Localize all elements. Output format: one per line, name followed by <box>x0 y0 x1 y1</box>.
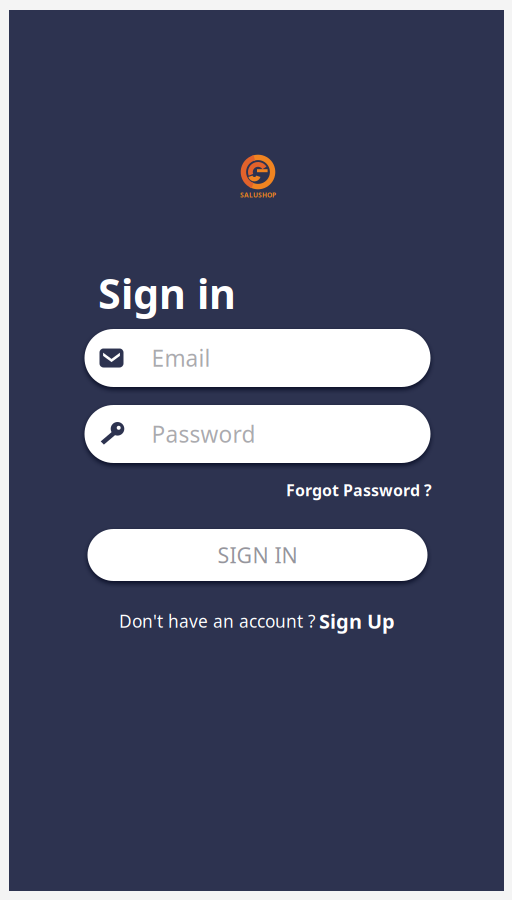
staticText: Password <box>151 419 255 449</box>
button[interactable]: SIGN IN <box>87 529 427 581</box>
staticText: Don't have an account ? <box>119 609 316 632</box>
button[interactable]: Email <box>84 329 430 387</box>
staticText: Forgot Password ? <box>286 479 432 501</box>
staticText: Sign Up <box>319 608 395 634</box>
button[interactable]: Don't have an account ? <box>119 608 395 634</box>
staticText: Sign in <box>98 266 236 320</box>
staticText: SIGN IN <box>217 541 297 569</box>
staticText: Email <box>151 343 210 373</box>
staticText: SALUSHOP <box>240 191 276 199</box>
button[interactable]: Password <box>84 405 430 463</box>
button[interactable]: Forgot Password ? <box>286 479 432 501</box>
